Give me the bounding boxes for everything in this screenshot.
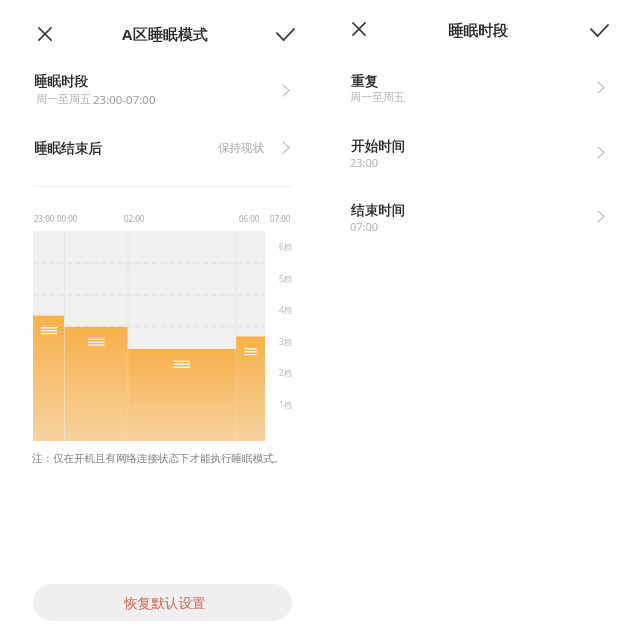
staticText: 23:00-07:00 (93, 92, 156, 108)
staticText: A区睡眠模式 (122, 24, 208, 44)
staticText: 周一至周五 (350, 90, 405, 104)
staticText: 5档 (279, 273, 292, 284)
staticText: 07:00 (270, 213, 291, 224)
button[interactable]: 恢复默认设置 (33, 584, 292, 621)
button[interactable]: 开始时间 (320, 127, 640, 179)
staticText: 睡眠时段 (34, 73, 88, 90)
staticText: 02:00 (124, 213, 145, 224)
staticText: 3档 (279, 336, 292, 347)
staticText: 恢复默认设置 (124, 595, 206, 612)
button[interactable]: 重复 (320, 62, 640, 114)
staticText: 23:00 (34, 213, 55, 224)
staticText: 00:00 (57, 213, 78, 224)
staticText: 周一至周五 (36, 92, 91, 106)
button[interactable]: 结束时间 (320, 191, 640, 243)
staticText: 保持现状 (218, 141, 264, 155)
staticText: 2档 (279, 367, 292, 378)
staticText: 06:00 (239, 213, 260, 224)
staticText: 07:00 (350, 219, 379, 234)
button[interactable]: 睡眠时段 (0, 62, 320, 114)
button[interactable]: 睡眠结束后 (0, 126, 320, 168)
button[interactable]: Confirm (582, 13, 616, 47)
staticText: 1档 (279, 399, 292, 410)
button[interactable]: Close (28, 17, 62, 51)
staticText: 23:00 (350, 155, 379, 170)
button[interactable]: Confirm (268, 17, 302, 51)
staticText: 6档 (279, 241, 292, 252)
staticText: 结束时间 (351, 202, 405, 219)
staticText: 睡眠结束后 (34, 140, 102, 157)
staticText: 重复 (351, 73, 378, 90)
staticText: 睡眠时段 (448, 22, 508, 41)
staticText: 4档 (279, 304, 292, 315)
staticText: 开始时间 (351, 138, 405, 155)
button[interactable]: Close (342, 12, 376, 46)
staticText: 注：仅在开机且有网络连接状态下才能执行睡眠模式。 (32, 452, 284, 465)
